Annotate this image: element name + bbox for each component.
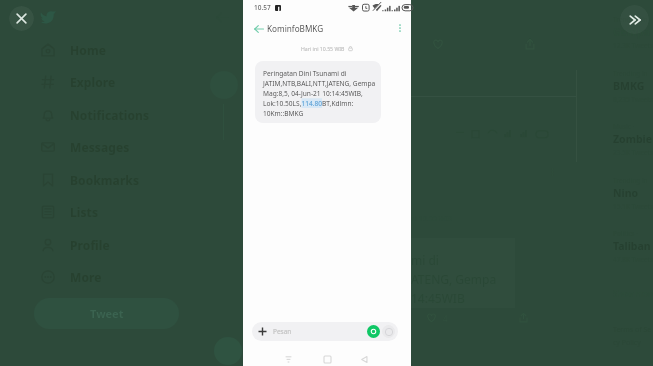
button[interactable]: Recents [281,352,295,366]
staticText: Tweet [90,306,124,321]
staticText: BMKG [613,79,645,93]
staticText: Nino [613,186,639,200]
staticText: Profile [70,237,110,253]
staticText: Peringatan Dini Tsunami di JATIM,NTB,BAL… [263,69,376,118]
button[interactable]: Send [367,325,380,338]
staticText: Zombie [613,132,652,146]
button[interactable]: Back [251,21,267,37]
button[interactable]: Back [357,352,371,366]
staticText: Gempa [613,25,651,39]
button[interactable]: Home [320,352,334,366]
staticText: More [70,269,102,285]
staticText: Explore [70,74,116,90]
staticText: Trending in Indonesia [613,15,653,24]
staticText: Messages [70,139,130,155]
staticText: Home [70,42,106,58]
button[interactable]: More options [393,21,407,35]
button[interactable]: Trending in Indonesia [613,15,653,67]
button[interactable]: Emoji [382,325,395,338]
button[interactable]: Close [9,6,34,31]
staticText: Pesan [273,327,292,336]
staticText: Hari ini 10.55 WIB [301,45,345,52]
staticText: KominfoBMKG [267,23,324,34]
staticText: Taliban [613,239,651,253]
staticText: 10.57 [254,3,271,12]
staticText: Notifications [70,107,150,123]
staticText: Bookmarks [70,172,140,188]
staticText: Lists [70,204,99,220]
button[interactable]: Next [620,5,649,34]
